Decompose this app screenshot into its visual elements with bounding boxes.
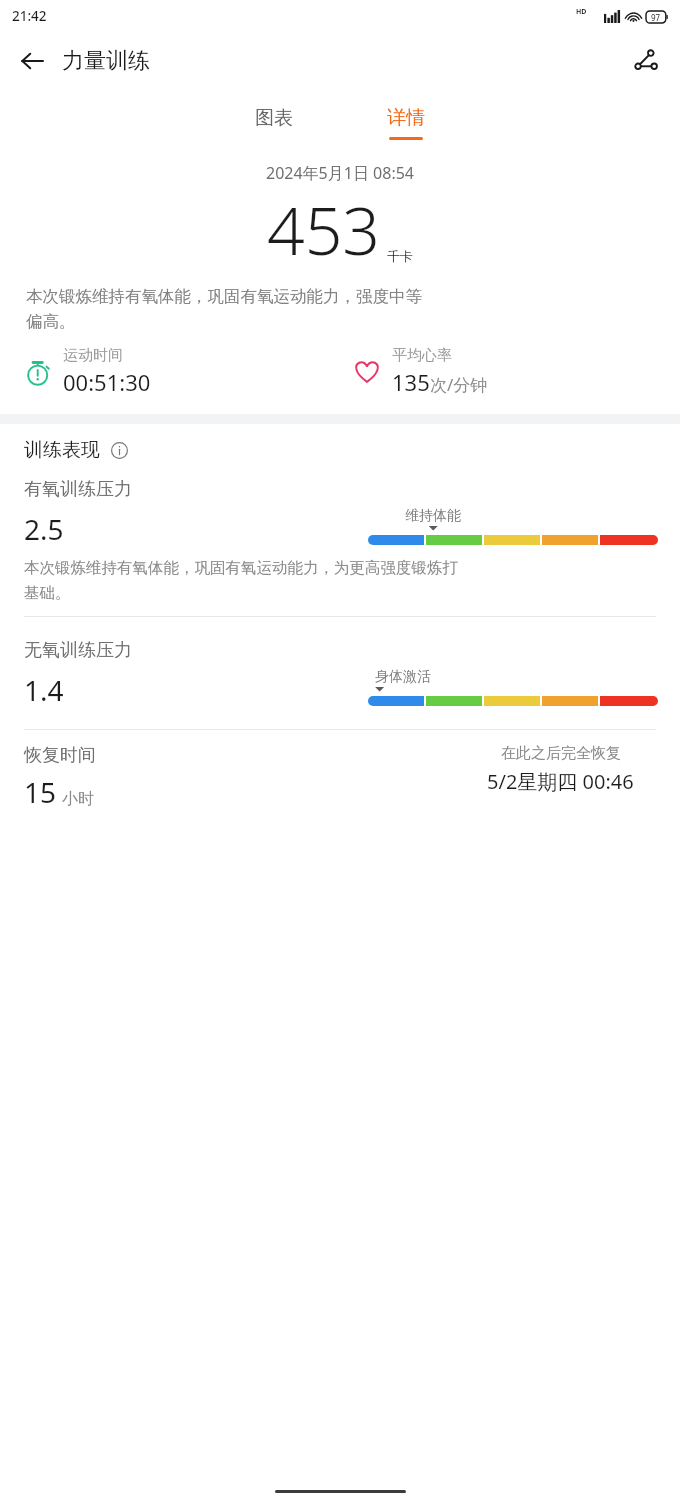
staticText: 恢复时间	[24, 744, 96, 767]
staticText: 本次锻炼维持有氧体能，巩固有氧运动能力，强度中等 偏高。	[26, 286, 662, 332]
staticText: 2024年5月1日 08:54	[0, 162, 680, 184]
staticText: HD	[576, 7, 587, 17]
staticText: 97	[651, 12, 661, 23]
button[interactable]: 运动时间	[22, 346, 351, 397]
staticText: 453	[267, 184, 381, 274]
button[interactable]: 平均心率	[351, 346, 680, 397]
staticText: 平均心率	[392, 346, 452, 365]
staticText: 5/2星期四 00:46	[487, 768, 634, 795]
staticText: 力量训练	[62, 47, 150, 75]
staticText: 详情	[387, 106, 425, 130]
button[interactable]: Share	[622, 37, 670, 85]
staticText: 运动时间	[63, 346, 123, 365]
staticText: 千卡	[387, 248, 413, 264]
staticText: 维持体能	[405, 507, 461, 525]
staticText: 本次锻炼维持有氧体能，巩固有氧运动能力，为更高强度锻炼打 基础。	[24, 558, 458, 602]
staticText: 1.4	[24, 671, 64, 709]
button[interactable]: Info	[108, 439, 130, 461]
staticText: 有氧训练压力	[24, 478, 132, 501]
staticText: 21:42	[12, 7, 47, 25]
button[interactable]: 详情	[361, 100, 451, 146]
button[interactable]: 图表	[229, 100, 319, 136]
staticText: 无氧训练压力	[24, 639, 132, 662]
staticText: 15	[24, 773, 57, 811]
staticText: 小时	[62, 789, 94, 809]
staticText: 在此之后完全恢复	[501, 744, 621, 763]
staticText: 身体激活	[375, 668, 431, 686]
button[interactable]: Back	[8, 37, 56, 85]
staticText: 2.5	[24, 510, 64, 548]
staticText: 图表	[255, 106, 293, 130]
staticText: 次/分钟	[430, 373, 488, 396]
staticText: 135	[392, 367, 430, 397]
staticText: 训练表现	[24, 438, 100, 462]
staticText: 00:51:30	[63, 367, 151, 397]
